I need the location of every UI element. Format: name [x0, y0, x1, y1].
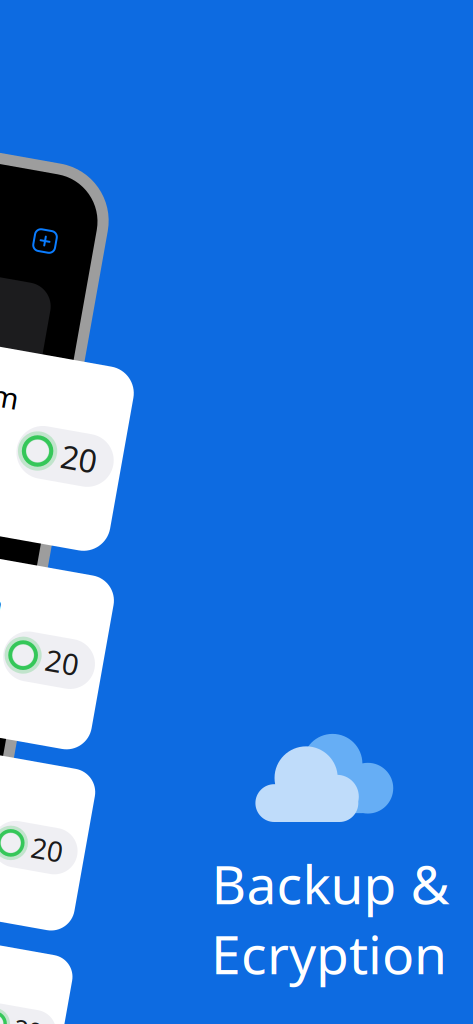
staticText: 20 — [45, 643, 79, 682]
staticText: 20 — [14, 1013, 42, 1024]
staticText: 20 — [61, 437, 97, 480]
staticText: Backup & — [211, 848, 449, 919]
staticText: 20 — [31, 831, 63, 868]
staticText: 8:30 am — [0, 370, 19, 409]
staticText: Ecryption — [211, 918, 447, 989]
staticText: 8:30 am — [0, 579, 3, 614]
